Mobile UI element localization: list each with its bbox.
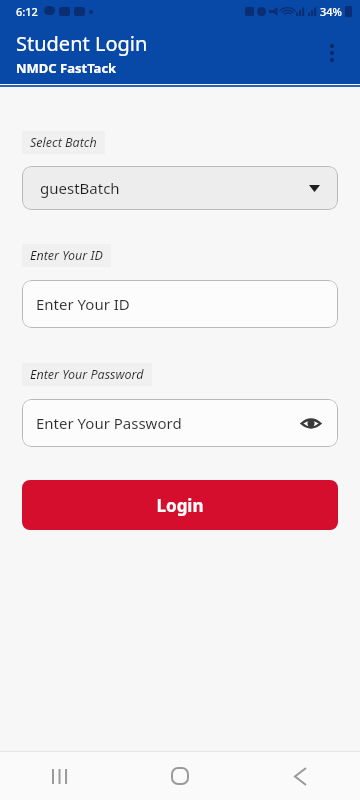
staticText: Enter Your ID (30, 247, 103, 264)
staticText: Login (156, 494, 204, 517)
staticText: Enter Your ID (36, 294, 324, 314)
button[interactable]: guestBatch (22, 166, 338, 210)
staticText: NMDC FastTack (16, 59, 117, 77)
button[interactable]: Home (120, 752, 240, 800)
button[interactable]: More options (312, 33, 352, 73)
staticText: Student Login (16, 30, 148, 57)
staticText: guestBatch (40, 178, 309, 198)
button[interactable]: Recent apps (0, 752, 120, 800)
staticText: 34% (320, 4, 342, 19)
staticText: Select Batch (30, 134, 97, 151)
button[interactable]: Show password (298, 410, 324, 436)
staticText: 6:12 (16, 4, 38, 19)
staticText: Enter Your Password (36, 413, 298, 433)
button[interactable]: Enter Your Password (22, 399, 338, 447)
staticText: Enter Your Password (30, 366, 144, 383)
button[interactable]: Enter Your ID (22, 280, 338, 328)
button[interactable]: Login (22, 480, 338, 530)
button[interactable]: Back (240, 752, 360, 800)
